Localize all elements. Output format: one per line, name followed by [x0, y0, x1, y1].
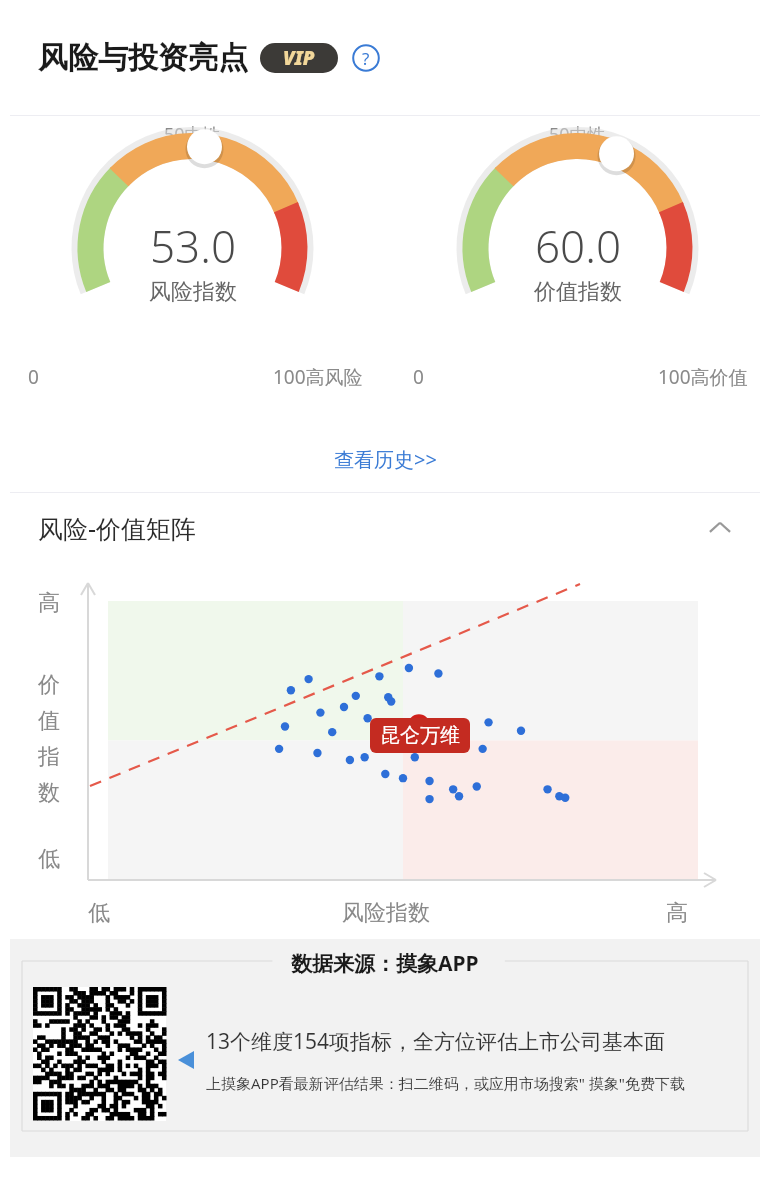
staticText: 100高价值 — [658, 364, 748, 390]
staticText: 昆仑万维 — [380, 723, 460, 748]
staticText: 高 — [666, 899, 688, 927]
button[interactable]: Help — [350, 42, 382, 74]
staticText: 低 — [38, 845, 60, 873]
staticText: 60.0 — [535, 216, 622, 276]
button[interactable]: 昆仑万维 — [370, 718, 470, 753]
button[interactable]: VIP — [260, 43, 338, 73]
staticText: 50中性 — [164, 122, 221, 147]
staticText: 指 — [38, 743, 60, 771]
staticText: 0 — [413, 364, 424, 390]
staticText: 数据来源：摸象APP — [291, 949, 479, 978]
staticText: 值 — [38, 707, 60, 735]
staticText: 低 — [88, 899, 110, 927]
staticText: 100高风险 — [273, 364, 363, 390]
staticText: VIP — [283, 45, 315, 71]
staticText: ? — [362, 47, 370, 70]
staticText: 查看历史>> — [334, 446, 437, 473]
staticText: 风险指数 — [149, 278, 237, 306]
staticText: 53.0 — [150, 216, 237, 276]
staticText: 价 — [38, 671, 60, 699]
button[interactable]: Collapse — [700, 508, 740, 548]
staticText: 价值指数 — [534, 278, 622, 306]
staticText: 13个维度154项指标，全方位评估上市公司基本面 — [206, 1027, 666, 1056]
staticText: 0 — [28, 364, 39, 390]
staticText: 数 — [38, 779, 60, 807]
button[interactable]: 查看历史>> — [326, 438, 445, 481]
staticText: 风险与投资亮点 — [38, 39, 248, 77]
staticText: 风险指数 — [342, 899, 430, 927]
staticText: 风险-价值矩阵 — [38, 511, 197, 545]
staticText: 上摸象APP看最新评估结果：扫二维码，或应用市场搜索" 摸象"免费下载 — [206, 1073, 685, 1093]
staticText: 50中性 — [549, 122, 606, 147]
staticText: 高 — [38, 589, 60, 617]
